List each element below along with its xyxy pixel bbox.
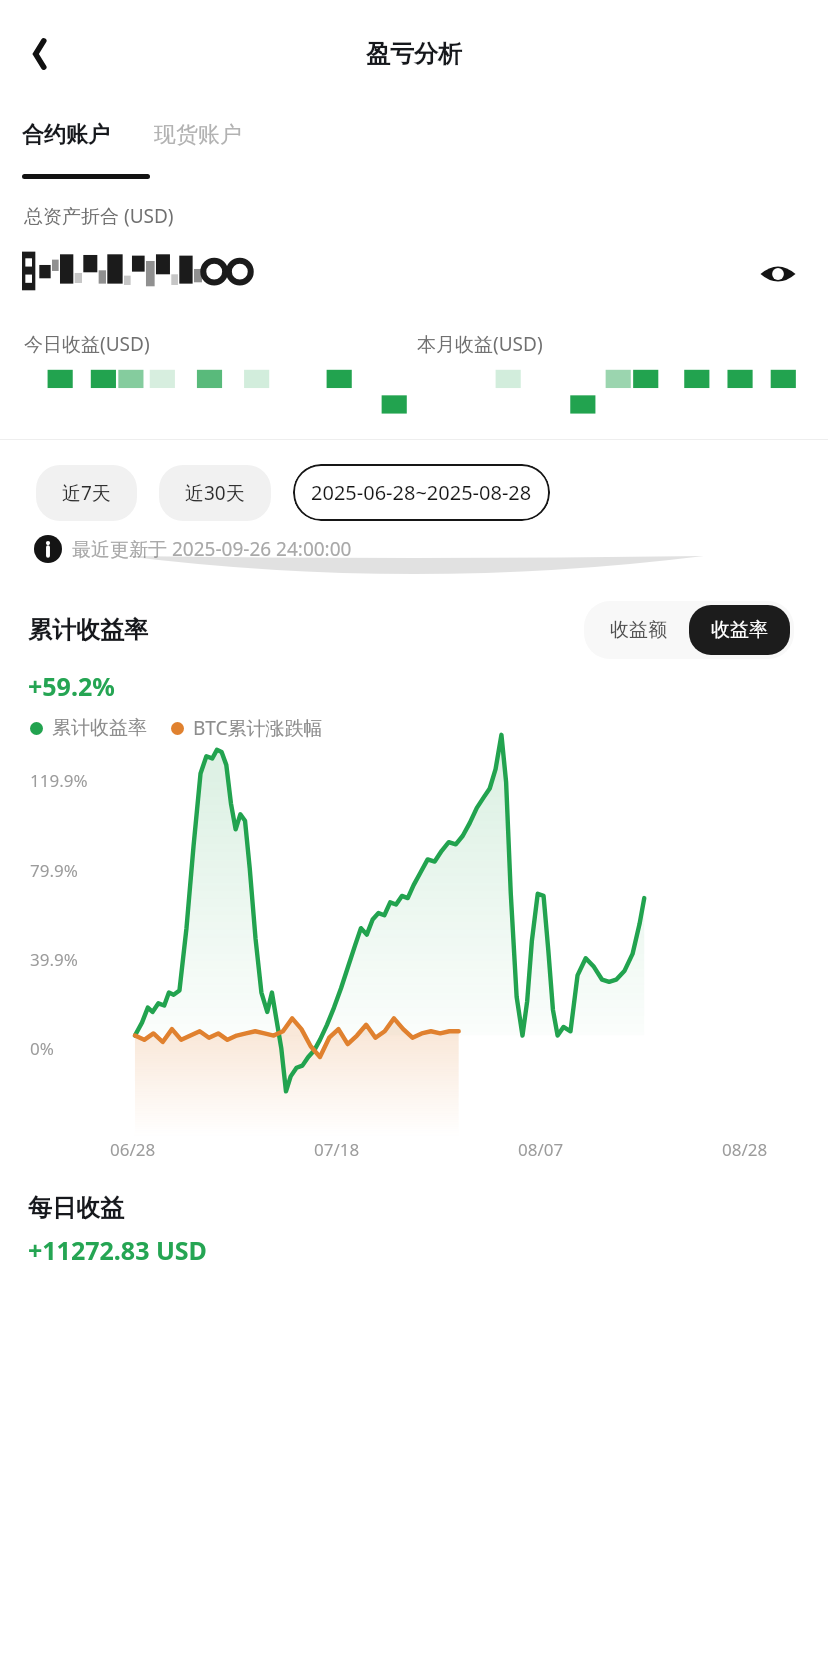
staticText: 近30天 — [185, 480, 245, 506]
staticText: 2025-06-28~2025-08-28 — [311, 479, 532, 506]
staticText: +11272.83 USD — [28, 1233, 207, 1267]
staticText: 06/28 — [110, 1138, 156, 1161]
staticText: 收益额 — [610, 618, 667, 642]
button[interactable]: Toggle balance visibility — [750, 246, 806, 302]
button[interactable]: 近7天 — [36, 465, 137, 521]
staticText: 每日收益 — [28, 1193, 124, 1223]
staticText: 39.9% — [30, 948, 78, 971]
staticText: 现货账户 — [154, 121, 242, 149]
button[interactable]: 2025-06-28~2025-08-28 — [293, 464, 550, 521]
staticText: 总资产折合 (USD) — [24, 203, 174, 229]
button[interactable]: 收益额 — [588, 605, 689, 655]
button[interactable]: Back — [8, 23, 70, 85]
staticText: 合约账户 — [22, 121, 110, 149]
staticText: 08/07 — [518, 1138, 564, 1161]
staticText: 最近更新于 2025-09-26 24:00:00 — [72, 536, 352, 562]
staticText: 79.9% — [30, 859, 78, 882]
button[interactable]: 收益率 — [689, 605, 790, 655]
staticText: BTC累计涨跌幅 — [193, 715, 323, 741]
button[interactable]: 合约账户 — [0, 121, 118, 149]
staticText: 07/18 — [314, 1138, 360, 1161]
button[interactable]: 现货账户 — [118, 121, 250, 149]
staticText: 今日收益(USD) — [24, 331, 150, 357]
staticText: 0% — [30, 1037, 54, 1060]
staticText: +59.2% — [28, 669, 115, 703]
staticText: 累计收益率 — [28, 615, 148, 645]
staticText: 盈亏分析 — [366, 39, 462, 69]
staticText: 本月收益(USD) — [417, 331, 543, 357]
staticText: 119.9% — [30, 769, 88, 792]
staticText: 累计收益率 — [52, 716, 147, 740]
button[interactable]: 近30天 — [159, 465, 271, 521]
staticText: 近7天 — [62, 480, 111, 506]
staticText: 收益率 — [711, 618, 768, 642]
staticText: 08/28 — [722, 1138, 768, 1161]
